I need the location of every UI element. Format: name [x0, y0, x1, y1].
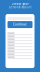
staticText: personal account — [8, 5, 31, 9]
staticText: Create your — [11, 2, 28, 5]
button[interactable]: Continue — [7, 21, 32, 28]
staticText: Continue — [13, 23, 27, 26]
